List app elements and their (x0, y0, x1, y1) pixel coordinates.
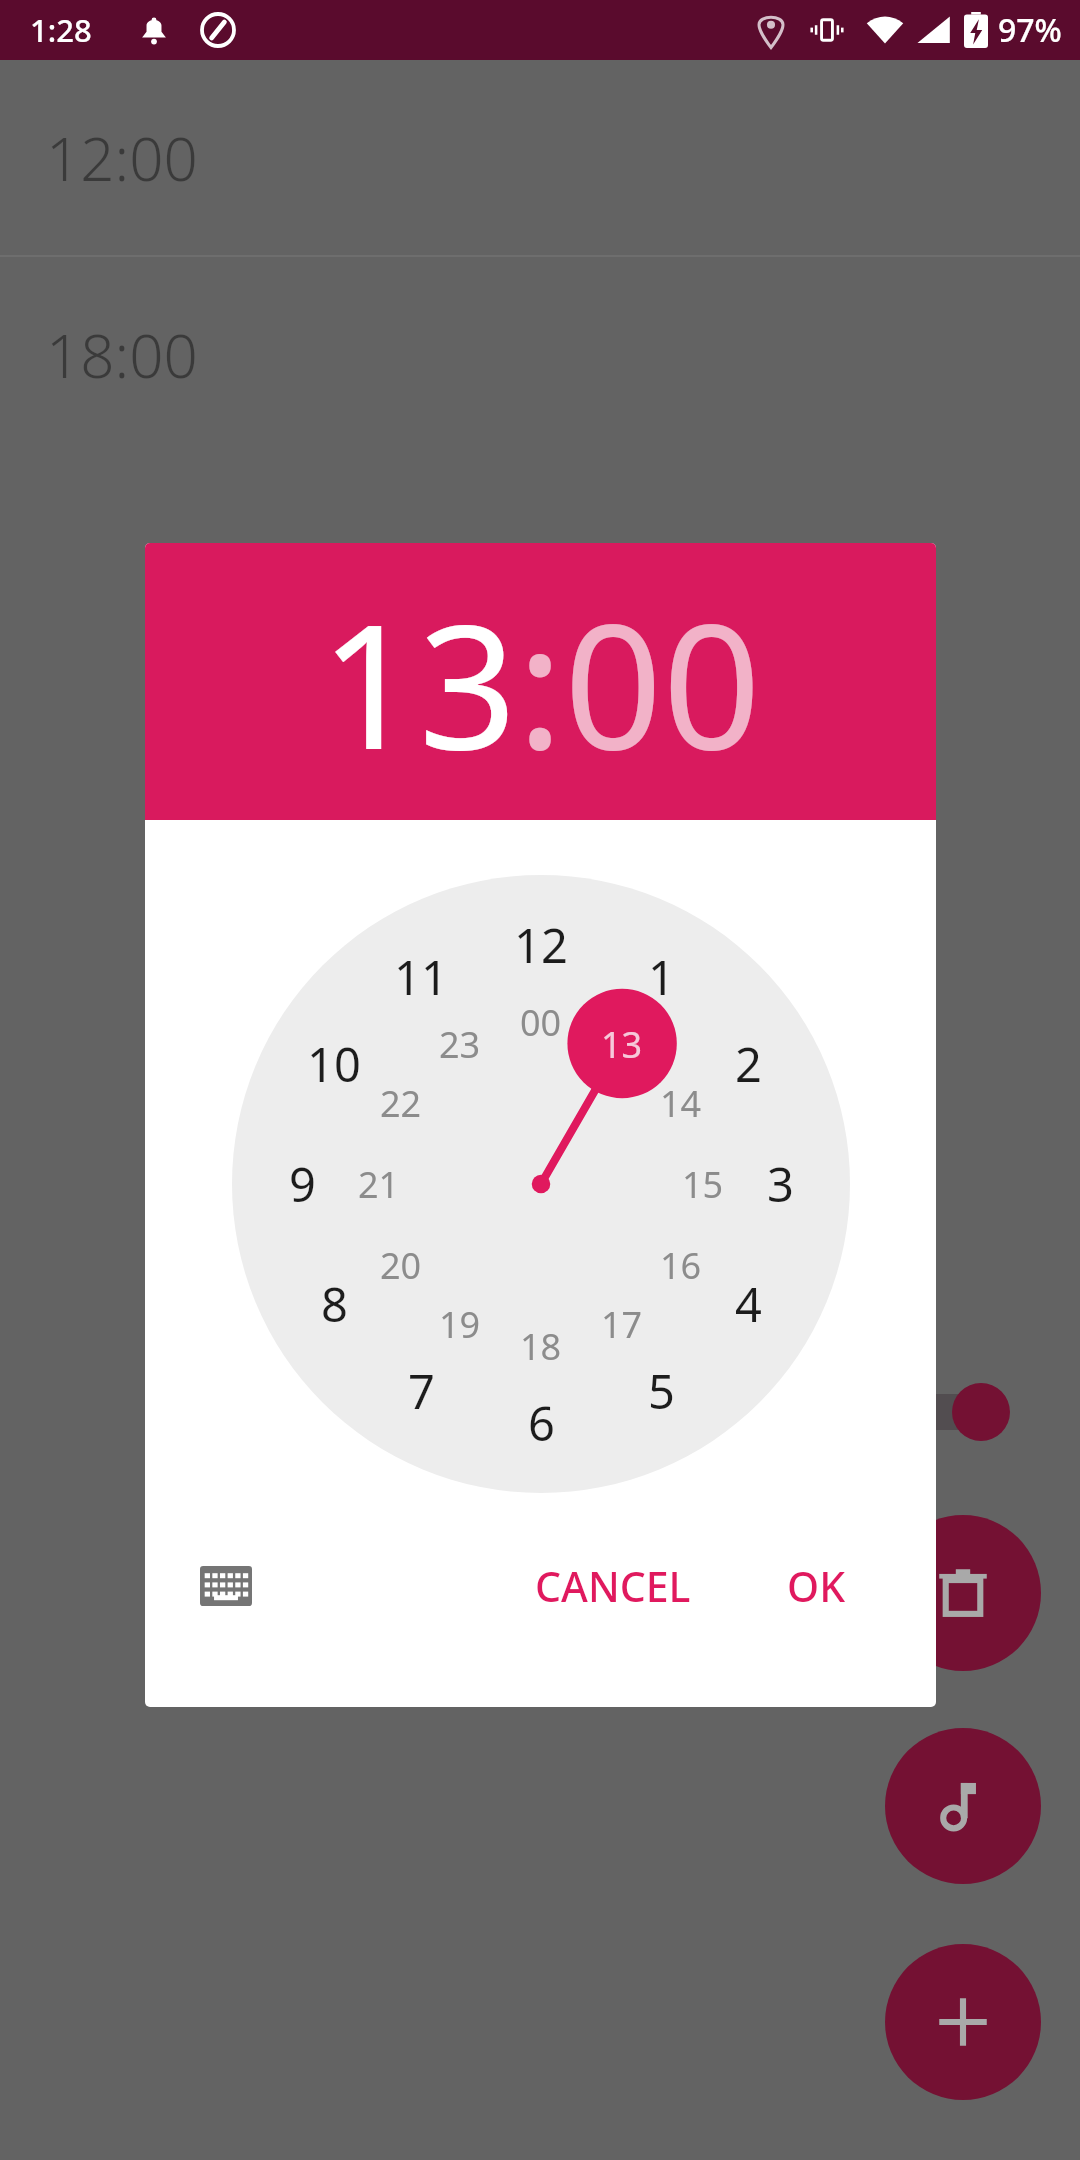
button[interactable]: 4 (702, 1269, 794, 1339)
staticText: 12:00 (46, 117, 198, 199)
button[interactable]: 2 (702, 1029, 794, 1099)
staticText: 6 (528, 1391, 555, 1455)
button[interactable]: 14 (635, 1068, 727, 1138)
staticText: 97% (998, 8, 1062, 52)
staticText: 5 (648, 1359, 675, 1423)
staticText: 1:28 (30, 9, 92, 51)
staticText: 10 (307, 1032, 361, 1096)
button[interactable]: Toggle alarm (878, 1382, 1010, 1442)
button[interactable]: 16 (635, 1230, 727, 1300)
staticText: 18 (520, 1322, 562, 1371)
button[interactable]: 00 (495, 987, 587, 1057)
button[interactable]: 9 (256, 1149, 348, 1219)
staticText: 4 (735, 1272, 762, 1336)
staticText: 8 (321, 1272, 348, 1336)
button[interactable]: 13 (576, 1009, 668, 1079)
staticText: 18:00 (46, 314, 198, 396)
staticText: : (517, 565, 564, 799)
button[interactable]: 3 (734, 1149, 826, 1219)
staticText: CANCEL (535, 1558, 691, 1614)
staticText: 1 (648, 945, 675, 1009)
button[interactable]: CANCEL (517, 1543, 709, 1629)
button[interactable]: 15 (657, 1149, 749, 1219)
button[interactable]: 19 (414, 1289, 506, 1359)
button[interactable]: 17 (576, 1289, 668, 1359)
staticText: 15 (682, 1160, 724, 1209)
button[interactable]: 23 (414, 1009, 506, 1079)
button[interactable]: 18 (495, 1311, 587, 1381)
button[interactable]: 22 (355, 1068, 447, 1138)
button[interactable]: 8 (288, 1269, 380, 1339)
staticText: 19 (439, 1300, 481, 1349)
staticText: 22 (380, 1079, 422, 1128)
button[interactable]: 20 (355, 1230, 447, 1300)
button[interactable]: Add alarm (885, 1944, 1041, 2100)
staticText: 13 (320, 565, 517, 799)
button[interactable]: Switch to text input mode (183, 1543, 269, 1629)
staticText: 17 (601, 1300, 643, 1349)
button[interactable]: Delete alarm (885, 1515, 1041, 1671)
button[interactable]: 6 (495, 1388, 587, 1458)
staticText: 11 (394, 945, 448, 1009)
staticText: 21 (358, 1160, 400, 1209)
button[interactable]: 21 (333, 1149, 425, 1219)
staticText: 2 (735, 1032, 762, 1096)
staticText: 16 (660, 1241, 702, 1290)
staticText: OK (787, 1558, 846, 1614)
staticText: 12 (514, 913, 568, 977)
button[interactable]: 00 (564, 565, 761, 799)
button[interactable]: 11 (375, 942, 467, 1012)
button[interactable]: OK (741, 1543, 891, 1629)
staticText: 00 (520, 998, 562, 1047)
button[interactable]: 12 (495, 910, 587, 980)
staticText: 23 (439, 1020, 481, 1069)
button[interactable]: 1 (615, 942, 707, 1012)
button[interactable]: 7 (375, 1356, 467, 1426)
staticText: 7 (408, 1359, 435, 1423)
button[interactable]: 13 (320, 565, 517, 799)
button[interactable]: 5 (615, 1356, 707, 1426)
staticText: 3 (767, 1152, 794, 1216)
staticText: 9 (289, 1152, 316, 1216)
staticText: 20 (380, 1241, 422, 1290)
staticText: 13 (601, 1020, 643, 1069)
staticText: 14 (660, 1079, 702, 1128)
staticText: 00 (564, 565, 761, 799)
button[interactable]: 10 (288, 1029, 380, 1099)
button[interactable]: Choose ringtone (885, 1728, 1041, 1884)
